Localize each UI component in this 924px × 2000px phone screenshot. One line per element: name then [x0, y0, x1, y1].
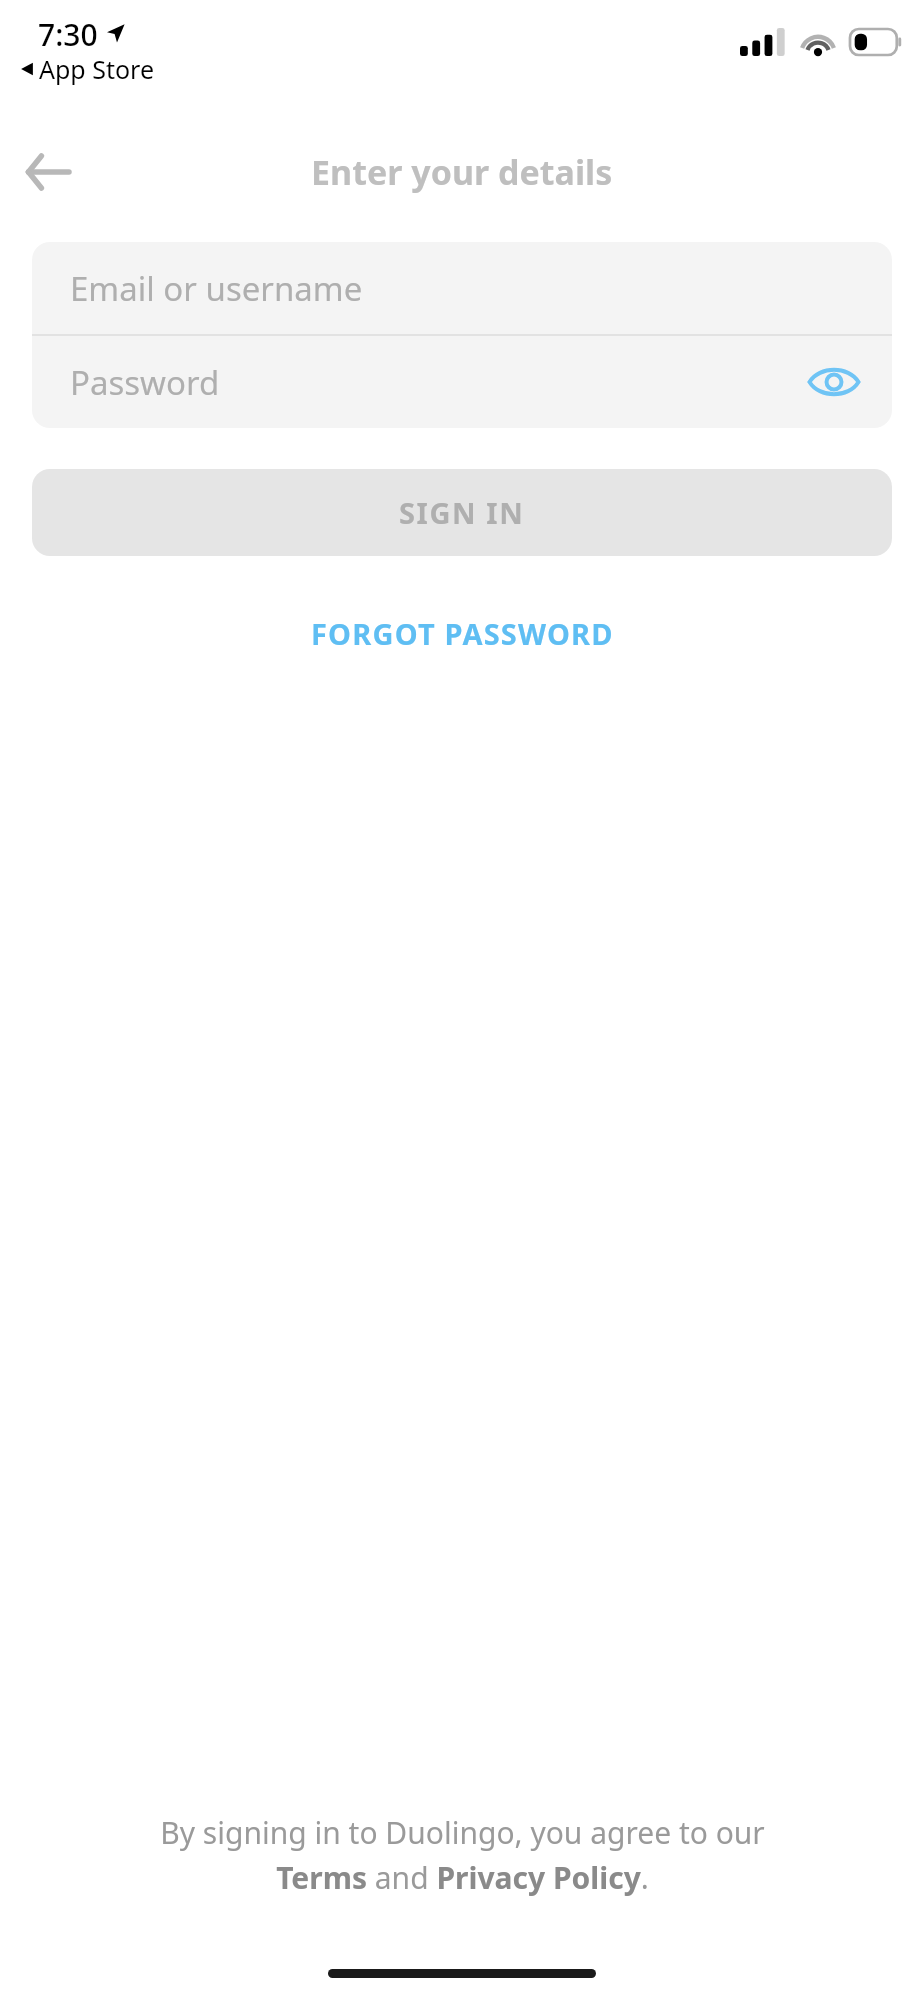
button[interactable]: SIGN IN	[32, 469, 892, 556]
button[interactable]: By signing in to Duolingo, you agree to …	[40, 1812, 884, 1897]
staticText: App Store	[39, 52, 155, 86]
button[interactable]: Password	[32, 336, 892, 428]
staticText: Password	[70, 360, 220, 405]
button[interactable]: Back	[14, 140, 78, 204]
button[interactable]: Email or username	[32, 242, 892, 334]
staticText: 7:30	[38, 14, 98, 55]
button[interactable]: Show password	[800, 348, 868, 416]
button[interactable]: FORGOT PASSWORD	[283, 602, 642, 665]
staticText: FORGOT PASSWORD	[311, 614, 614, 653]
staticText: SIGN IN	[399, 493, 525, 532]
staticText: By signing in to Duolingo, you agree to …	[160, 1812, 765, 1897]
staticText: Email or username	[70, 266, 363, 311]
staticText: Enter your details	[311, 149, 613, 195]
